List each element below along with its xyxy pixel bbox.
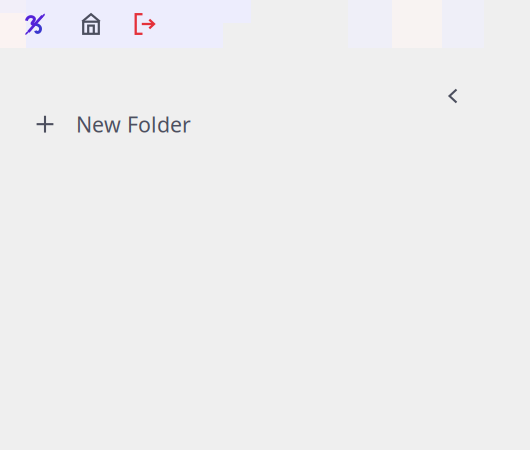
staticText: New Folder <box>76 110 191 138</box>
button[interactable]: Dashboard <box>61 0 121 48</box>
button[interactable]: Sign out <box>121 0 169 48</box>
button[interactable]: Home <box>8 0 61 48</box>
button[interactable]: New Folder <box>36 110 191 138</box>
button[interactable]: Back <box>438 81 468 111</box>
